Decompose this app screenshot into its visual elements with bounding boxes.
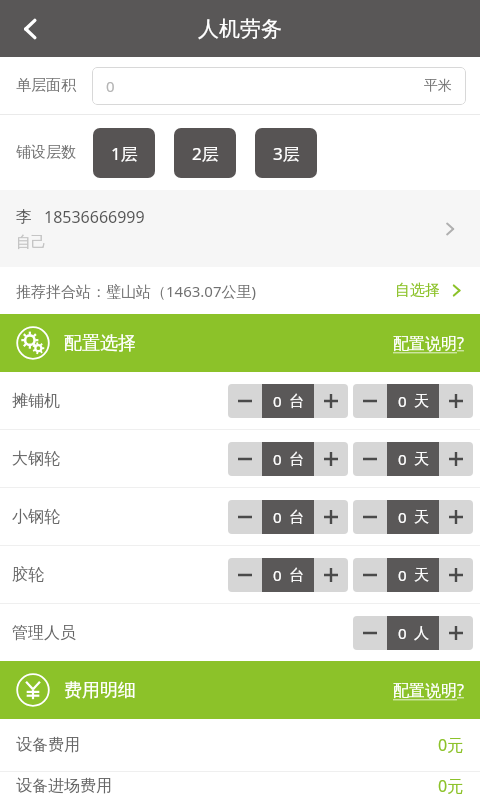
button[interactable]: 0 bbox=[387, 558, 439, 592]
other: Configuration bbox=[16, 326, 50, 360]
staticText: 人机劳务 bbox=[198, 16, 282, 42]
button[interactable]: 3层 bbox=[255, 128, 317, 178]
staticText: 0 bbox=[273, 391, 282, 411]
staticText: 配置说明? bbox=[393, 679, 464, 701]
button[interactable]: 0 bbox=[387, 442, 439, 476]
button[interactable]: Increase bbox=[314, 558, 348, 592]
staticText: 0 bbox=[398, 565, 407, 585]
staticText: 配置选择 bbox=[64, 332, 136, 355]
button[interactable]: 0 bbox=[262, 442, 314, 476]
button[interactable]: 李 bbox=[0, 190, 480, 267]
button[interactable]: 0 bbox=[262, 384, 314, 418]
button[interactable]: Increase bbox=[439, 384, 473, 418]
button[interactable]: Increase bbox=[314, 384, 348, 418]
button[interactable]: Decrease bbox=[353, 558, 387, 592]
staticText: 0 bbox=[398, 507, 407, 527]
button[interactable]: 0 bbox=[387, 384, 439, 418]
staticText: 台 bbox=[289, 508, 304, 527]
button[interactable]: Decrease bbox=[353, 442, 387, 476]
button[interactable]: 0 bbox=[387, 616, 439, 650]
staticText: 台 bbox=[289, 450, 304, 469]
staticText: 单层面积 bbox=[16, 76, 76, 95]
button[interactable]: Decrease bbox=[228, 384, 262, 418]
button[interactable]: Increase bbox=[439, 616, 473, 650]
staticText: 李 bbox=[16, 207, 32, 227]
button[interactable]: Increase bbox=[439, 500, 473, 534]
staticText: 0 bbox=[106, 76, 115, 96]
button[interactable]: Decrease bbox=[228, 500, 262, 534]
staticText: 0 bbox=[398, 449, 407, 469]
button[interactable]: Increase bbox=[314, 500, 348, 534]
staticText: 人 bbox=[414, 624, 429, 643]
staticText: 台 bbox=[289, 392, 304, 411]
staticText: 0 bbox=[398, 623, 407, 643]
staticText: 0 bbox=[273, 507, 282, 527]
staticText: 自选择 bbox=[395, 281, 440, 300]
button[interactable]: 配置说明? bbox=[387, 671, 470, 709]
staticText: 推荐拌合站：璧山站（1463.07公里) bbox=[16, 281, 257, 301]
staticText: 天 bbox=[414, 508, 429, 527]
staticText: 0 bbox=[273, 449, 282, 469]
staticText: 台 bbox=[289, 566, 304, 585]
button[interactable]: 0 bbox=[262, 558, 314, 592]
staticText: 天 bbox=[414, 392, 429, 411]
staticText: 3层 bbox=[273, 142, 300, 165]
staticText: 0元 bbox=[438, 734, 464, 756]
staticText: 2层 bbox=[192, 142, 219, 165]
staticText: 配置说明? bbox=[393, 332, 464, 354]
button[interactable]: 0 bbox=[387, 500, 439, 534]
staticText: 设备费用 bbox=[16, 735, 80, 755]
staticText: 天 bbox=[414, 450, 429, 469]
staticText: 0元 bbox=[438, 775, 464, 797]
staticText: 铺设层数 bbox=[16, 143, 76, 162]
button[interactable]: Decrease bbox=[228, 442, 262, 476]
button[interactable]: 推荐拌合站：璧山站（1463.07公里) bbox=[0, 267, 480, 314]
button[interactable]: Increase bbox=[439, 558, 473, 592]
staticText: 摊铺机 bbox=[12, 391, 60, 411]
button[interactable]: Decrease bbox=[353, 384, 387, 418]
staticText: 0 bbox=[273, 565, 282, 585]
staticText: 设备进场费用 bbox=[16, 776, 112, 796]
staticText: 管理人员 bbox=[12, 623, 76, 643]
button[interactable]: Increase bbox=[314, 442, 348, 476]
button[interactable]: 2层 bbox=[174, 128, 236, 178]
staticText: 费用明细 bbox=[64, 679, 136, 702]
button[interactable]: Decrease bbox=[353, 500, 387, 534]
staticText: 大钢轮 bbox=[12, 449, 60, 469]
staticText: 胶轮 bbox=[12, 565, 44, 585]
button[interactable]: Back bbox=[0, 0, 62, 57]
staticText: 0 bbox=[398, 391, 407, 411]
button[interactable]: Decrease bbox=[228, 558, 262, 592]
other: Fee detail bbox=[16, 673, 50, 707]
button[interactable]: Decrease bbox=[353, 616, 387, 650]
staticText: 平米 bbox=[424, 77, 452, 95]
staticText: 自己 bbox=[16, 233, 46, 252]
staticText: 1层 bbox=[111, 142, 138, 165]
button[interactable]: 配置说明? bbox=[387, 324, 470, 362]
staticText: 天 bbox=[414, 566, 429, 585]
staticText: 18536666999 bbox=[44, 206, 145, 228]
button[interactable]: 0 bbox=[92, 67, 466, 105]
button[interactable]: Increase bbox=[439, 442, 473, 476]
button[interactable]: 1层 bbox=[93, 128, 155, 178]
staticText: 小钢轮 bbox=[12, 507, 60, 527]
button[interactable]: 0 bbox=[262, 500, 314, 534]
